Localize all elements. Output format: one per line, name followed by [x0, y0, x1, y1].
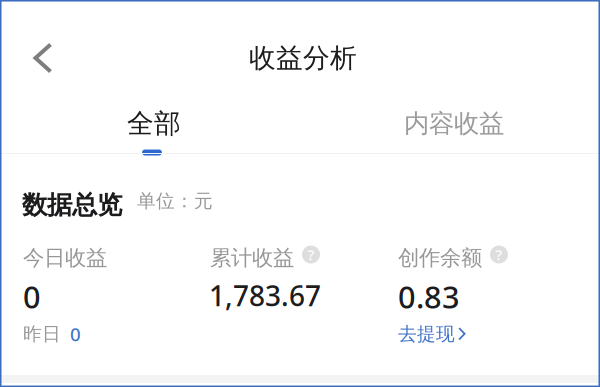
staticText: 0 [23, 276, 41, 317]
staticText: 收益分析 [249, 42, 357, 74]
staticText: 内容收益 [404, 108, 504, 139]
staticText: 数据总览 [22, 189, 122, 220]
staticText: 创作余额 [398, 245, 482, 271]
staticText: 昨日 [23, 322, 61, 345]
staticText: ? [307, 245, 314, 264]
button[interactable]: 累计收益说明 [302, 245, 320, 263]
staticText: 1,783.67 [209, 277, 321, 314]
staticText: 去提现 [398, 322, 455, 345]
staticText: ? [495, 245, 502, 264]
staticText: 累计收益 [210, 245, 294, 271]
staticText: 单位：元 [137, 189, 213, 212]
button[interactable]: Back [12, 29, 74, 87]
staticText: 0 [70, 322, 81, 346]
button[interactable]: 创作余额说明 [490, 245, 508, 263]
button[interactable]: 去提现 [398, 324, 466, 344]
button[interactable]: 内容收益 [304, 91, 600, 156]
staticText: 0.83 [398, 276, 460, 317]
button[interactable]: 全部 [4, 91, 304, 156]
staticText: 今日收益 [23, 245, 107, 271]
staticText: 全部 [127, 107, 181, 140]
